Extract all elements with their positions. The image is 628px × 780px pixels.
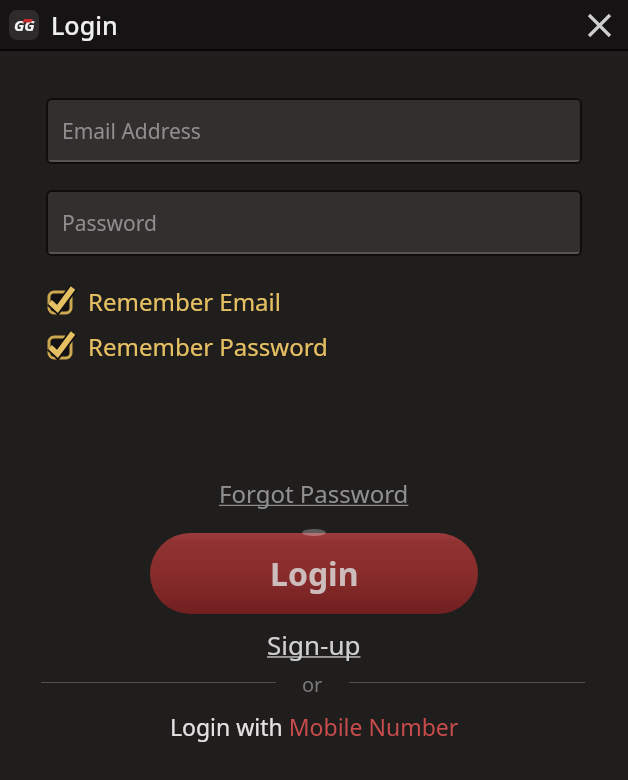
staticText: Login (270, 552, 359, 596)
staticText: Login (51, 8, 118, 42)
staticText: Password (62, 209, 157, 238)
button[interactable]: Login (150, 533, 478, 614)
button[interactable] (581, 7, 617, 43)
button[interactable]: Password (46, 190, 582, 256)
button[interactable]: Remember Password (47, 330, 328, 360)
button[interactable]: Email Address (46, 98, 582, 164)
button[interactable]: Sign-up (267, 627, 361, 662)
button[interactable]: Login with Mobile Number (170, 711, 459, 742)
staticText: Remember Email (88, 285, 281, 315)
button[interactable]: Forgot Password (219, 477, 409, 510)
staticText: or (302, 671, 323, 693)
staticText: Remember Password (88, 330, 328, 360)
button[interactable]: Remember Email (47, 285, 281, 315)
staticText: GG (14, 15, 35, 35)
staticText: Email Address (62, 117, 201, 146)
